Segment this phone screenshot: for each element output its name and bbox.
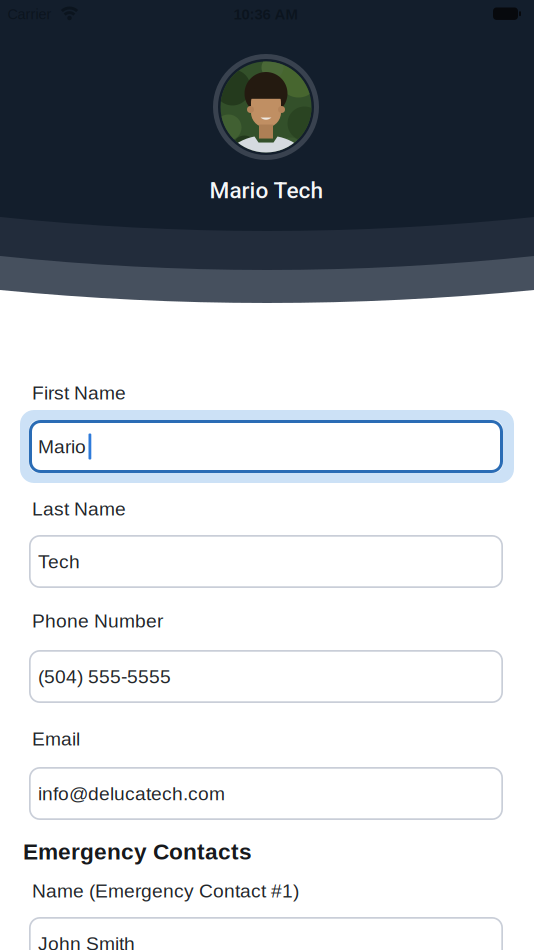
staticText: Last Name (32, 498, 126, 519)
staticText: 10:36 AM (233, 6, 297, 23)
staticText: Carrier (7, 6, 51, 22)
staticText: Tech (38, 551, 80, 572)
staticText: Mario Tech (209, 177, 323, 204)
staticText: Email (32, 728, 80, 749)
button[interactable]: info@delucatech.com (29, 767, 503, 820)
button[interactable]: John Smith (29, 917, 503, 950)
button[interactable]: Tech (29, 535, 503, 588)
staticText: (504) 555-5555 (38, 666, 171, 687)
staticText: Mario (38, 436, 86, 457)
staticText: First Name (32, 382, 126, 403)
staticText: info@delucatech.com (38, 783, 225, 804)
staticText: Name (Emergency Contact #1) (32, 880, 299, 901)
staticText: Emergency Contacts (23, 839, 252, 864)
staticText: Phone Number (32, 610, 163, 631)
staticText: John Smith (38, 933, 135, 950)
button[interactable]: (504) 555-5555 (29, 650, 503, 703)
button[interactable]: Mario (20, 410, 514, 483)
